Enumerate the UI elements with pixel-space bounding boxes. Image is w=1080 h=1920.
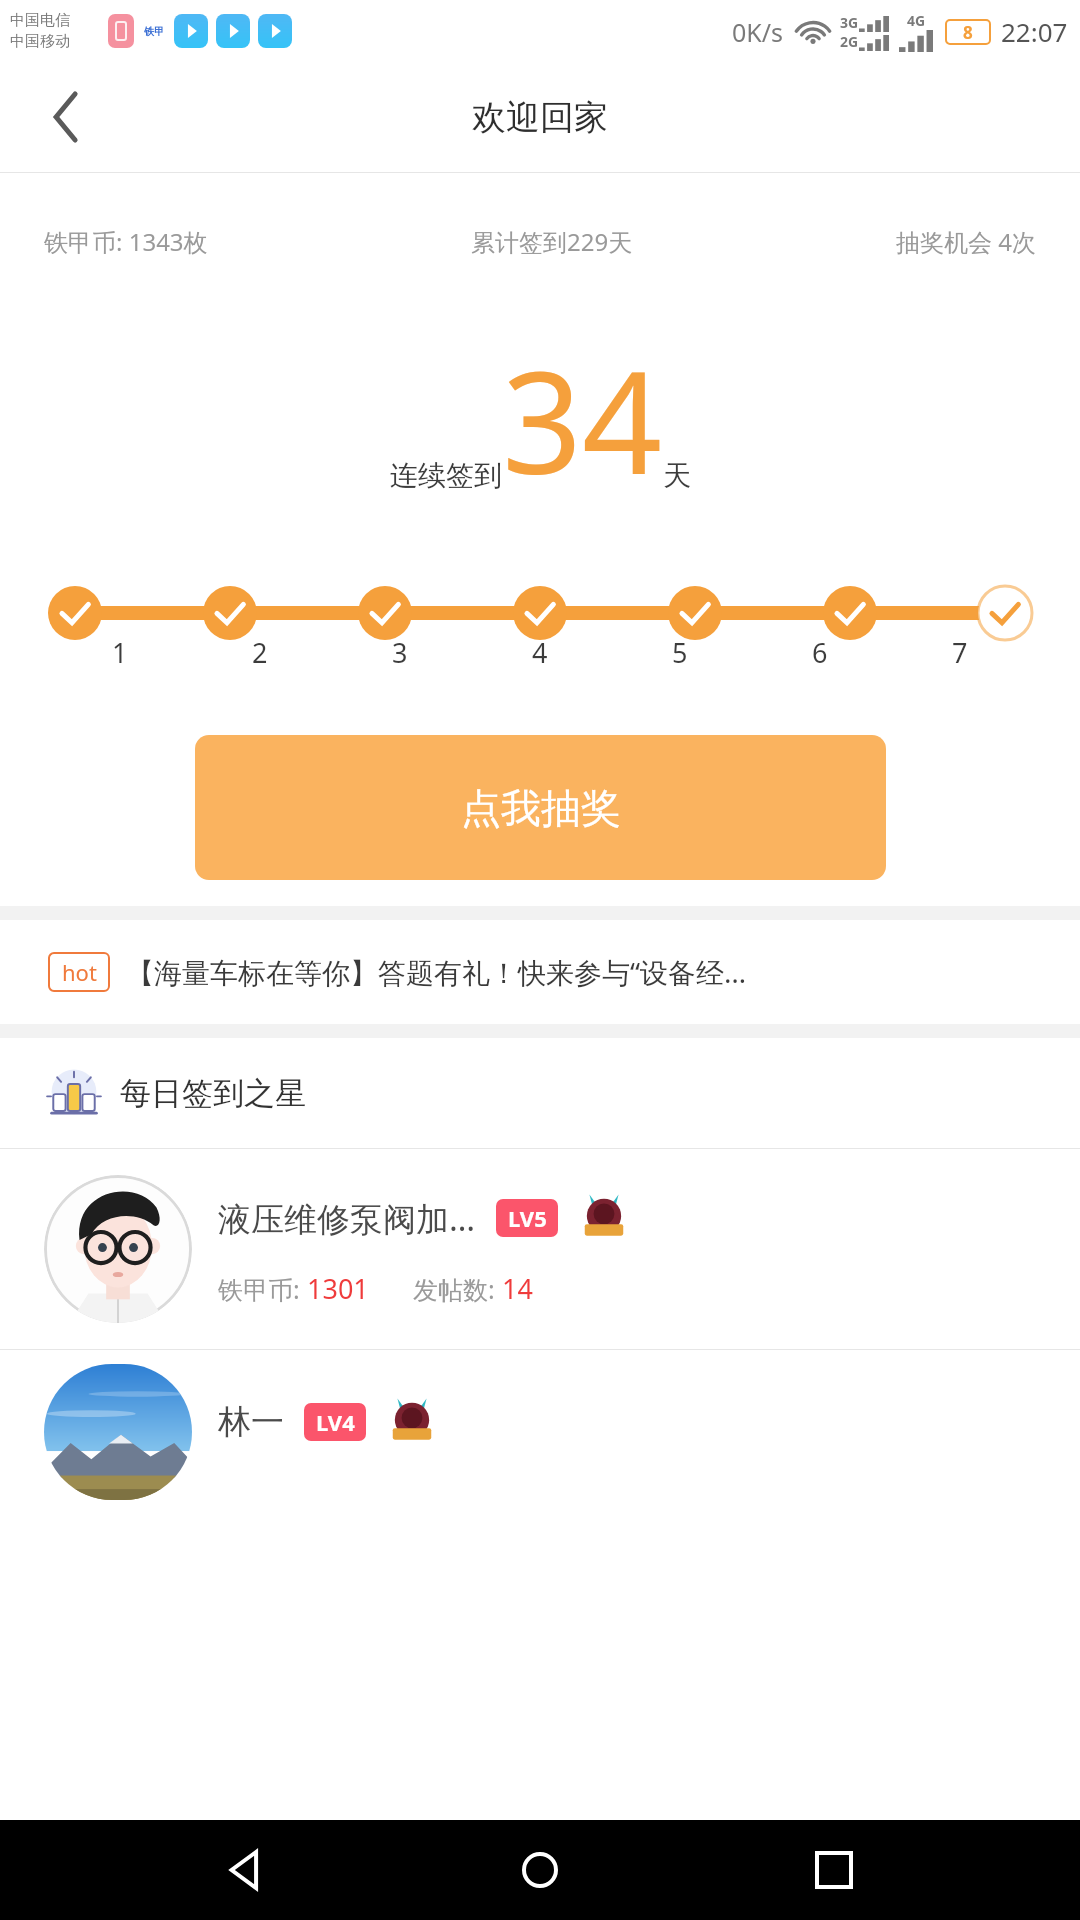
staticText: 发帖数: <box>413 1272 502 1306</box>
staticText: 3G <box>840 13 859 32</box>
staticText: 点我抽奖 <box>461 783 621 833</box>
staticText: 4 <box>532 634 548 671</box>
button[interactable]: Recent apps <box>786 1822 882 1918</box>
staticText: 抽奖机会 4次 <box>896 225 1036 258</box>
staticText: 铁甲币: <box>218 1272 307 1306</box>
staticText: 14 <box>502 1270 533 1307</box>
staticText: 每日签到之星 <box>120 1074 306 1113</box>
staticText: 7 <box>952 634 968 671</box>
staticText: LV4 <box>316 1407 355 1437</box>
staticText: 0K/s <box>732 15 784 49</box>
button[interactable]: 林一 <box>0 1350 1080 1500</box>
staticText: 林一 <box>218 1401 284 1443</box>
staticText: 4G <box>907 11 926 30</box>
staticText: 8 <box>963 21 973 44</box>
staticText: 5 <box>672 634 688 671</box>
staticText: 1301 <box>307 1270 369 1307</box>
button[interactable]: 点我抽奖 <box>195 735 886 880</box>
staticText: 铁甲币: 1343枚 <box>44 225 208 258</box>
staticText: 欢迎回家 <box>472 96 608 139</box>
staticText: 34 <box>502 324 663 515</box>
staticText: 累计签到229天 <box>471 225 633 258</box>
button[interactable]: Back <box>30 81 102 153</box>
staticText: 中国电信 <box>10 11 70 30</box>
button[interactable]: 液压维修泵阀加… <box>0 1149 1080 1349</box>
button[interactable]: Back <box>198 1822 294 1918</box>
staticText: 铁甲 <box>144 25 164 38</box>
staticText: 6 <box>812 634 828 671</box>
staticText: LV5 <box>508 1203 547 1233</box>
staticText: 1 <box>112 634 128 671</box>
staticText: 天 <box>663 458 691 493</box>
staticText: 22:07 <box>1001 14 1068 49</box>
staticText: 【海量车标在等你】答题有礼！快来参与“设备经… <box>126 953 747 991</box>
staticText: 连续签到 <box>390 458 502 493</box>
staticText: hot <box>62 957 97 987</box>
staticText: 中国移动 <box>10 32 70 51</box>
staticText: 2G <box>840 32 859 51</box>
staticText: 2 <box>252 634 268 671</box>
button[interactable]: hot <box>0 920 1080 1024</box>
staticText: 液压维修泵阀加… <box>218 1196 476 1241</box>
button[interactable]: Home <box>492 1822 588 1918</box>
staticText: 3 <box>392 634 408 671</box>
